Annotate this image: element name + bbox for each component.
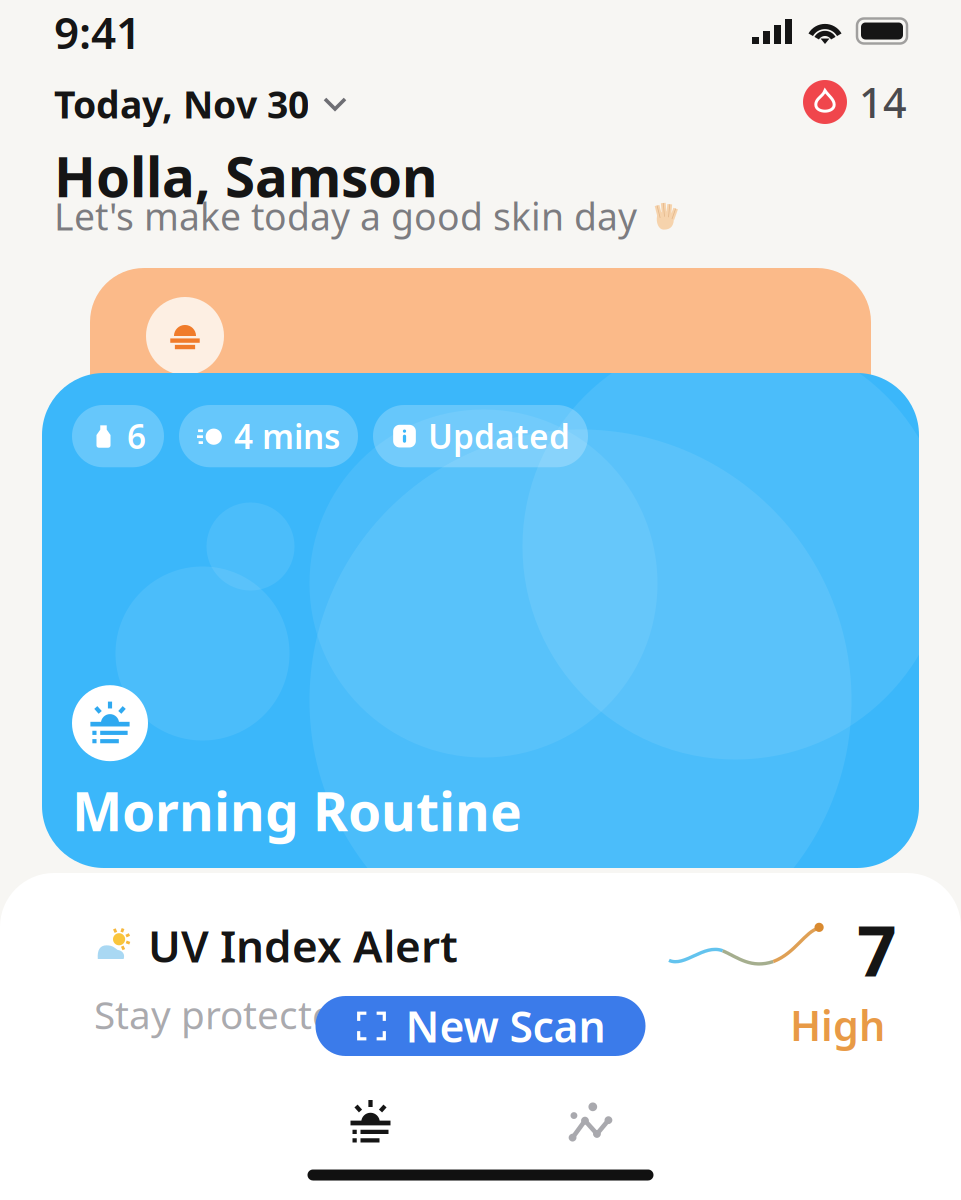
- button[interactable]: New Scan: [315, 996, 645, 1056]
- button[interactable]: UV Index Alert: [46, 903, 915, 1052]
- staticText: 4 mins: [234, 414, 340, 458]
- staticText: Holla, Samson: [54, 140, 438, 212]
- button[interactable]: Evening Routine: [90, 268, 871, 458]
- staticText: New Scan: [405, 998, 605, 1054]
- staticText: Let's make today a good skin day: [54, 191, 637, 241]
- staticText: 6: [127, 414, 146, 458]
- staticText: 14: [859, 75, 907, 129]
- button[interactable]: 6: [42, 373, 919, 868]
- staticText: Updated: [428, 414, 570, 458]
- staticText: Morning Routine: [72, 775, 522, 846]
- button[interactable]: Routine: [315, 1081, 425, 1163]
- button[interactable]: Streak: 14 days: [607, 67, 907, 137]
- staticText: 7: [857, 903, 897, 996]
- staticText: 9:41: [54, 3, 141, 61]
- staticText: High: [790, 998, 885, 1052]
- staticText: Today, Nov 30: [54, 79, 309, 129]
- staticText: UV Index Alert: [148, 916, 458, 974]
- button[interactable]: Today, Nov 30: [54, 69, 574, 139]
- staticText: Stay protected today: [94, 988, 471, 1040]
- button[interactable]: Insights: [535, 1081, 645, 1163]
